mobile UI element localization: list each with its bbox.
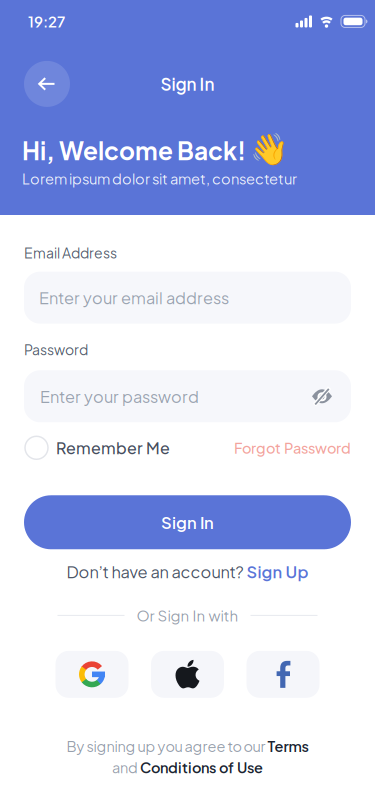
staticText: Sign In — [160, 73, 214, 95]
button[interactable]: Forgot Password — [234, 439, 351, 457]
staticText: Sign In — [161, 512, 214, 533]
button[interactable]: Sign in with Apple — [151, 651, 224, 698]
button[interactable]: Password — [24, 370, 351, 422]
staticText: Enter your password — [40, 386, 199, 406]
button[interactable]: Remember Me — [24, 436, 170, 459]
staticText: Sign Up — [246, 561, 308, 582]
staticText: Conditions of Use — [140, 758, 263, 776]
button[interactable]: Email Address — [24, 272, 351, 324]
staticText: Hi, Welcome Back! 👋 — [22, 132, 289, 167]
staticText: By signing up you agree to our — [66, 737, 267, 755]
staticText: Lorem ipsum dolor sit amet, consectetur — [22, 169, 297, 188]
staticText: Don’t have an account? — [66, 561, 246, 582]
button[interactable]: Conditions of Use — [140, 758, 263, 776]
button[interactable]: Terms — [267, 737, 308, 755]
staticText: Terms — [267, 737, 308, 755]
button[interactable]: Back — [24, 61, 70, 107]
button[interactable]: Sign in with Facebook — [246, 651, 319, 698]
button[interactable]: Sign in with Google — [55, 651, 128, 698]
staticText: Remember Me — [56, 438, 170, 458]
staticText: Email Address — [24, 244, 117, 262]
staticText: and — [112, 758, 140, 776]
staticText: Or Sign In with — [136, 606, 238, 625]
staticText: Password — [24, 341, 88, 358]
button[interactable]: Sign In — [24, 495, 351, 549]
staticText: Forgot Password — [234, 439, 351, 457]
staticText: 19:27 — [28, 12, 65, 31]
staticText: Enter your email address — [39, 287, 229, 308]
button[interactable]: Sign Up — [246, 561, 308, 582]
